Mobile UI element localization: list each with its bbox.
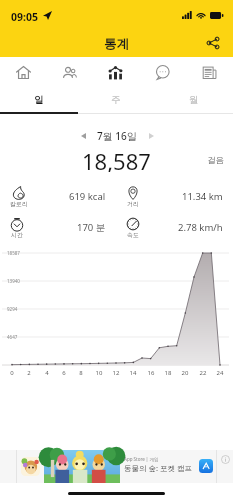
staticText: 일 [34,94,44,106]
button[interactable]: 시간 [0,212,116,243]
staticText: 걸음 [207,155,224,166]
staticText: 16 [145,369,157,377]
staticText: 거리 [127,200,139,208]
staticText: 시간 [11,231,23,239]
button[interactable]: 월 [155,88,233,114]
staticText: 월 [189,94,199,106]
staticText: 13940 [7,278,20,284]
staticText: 6 [58,369,70,377]
button[interactable]: App Store | 게임 [0,450,233,483]
staticText: 4 [41,369,53,377]
staticText: 9294 [7,306,18,312]
button[interactable]: Share [200,30,226,56]
staticText: 4647 [7,334,18,340]
button[interactable]: 칼로리 [0,181,116,212]
staticText: 0 [6,369,18,377]
staticText: 18 [162,369,174,377]
staticText: 18587 [7,250,20,256]
staticText: 12 [110,369,122,377]
staticText: 18,587 [82,146,151,172]
button[interactable]: 주 [77,88,155,114]
staticText: 09:05 [11,10,38,24]
staticText: 7월 16일 [97,129,137,143]
button[interactable]: 속도 [116,212,233,243]
staticText: 170 분 [77,221,106,234]
staticText: App Store | 게임 [124,456,159,462]
staticText: 칼로리 [10,200,28,208]
button[interactable]: Next day [142,127,160,144]
staticText: 속도 [127,231,139,239]
staticText: 2 [23,369,35,377]
staticText: 619 kcal [69,190,106,203]
button[interactable]: News [186,57,233,88]
button[interactable]: Previous day [74,127,92,144]
staticText: 2.78 km/h [178,221,223,234]
button[interactable]: 거리 [116,181,233,212]
staticText: 14 [127,369,139,377]
staticText: 10 [93,369,105,377]
button[interactable]: 일 [0,88,77,114]
staticText: 통계 [104,36,129,52]
staticText: 주 [111,94,121,106]
staticText: 동물의 숲: 포켓 캠프 [124,463,192,473]
staticText: 20 [179,369,191,377]
button[interactable]: Home [0,57,46,88]
staticText: 11.34 km [182,190,223,203]
button[interactable]: Statistics [92,57,139,88]
staticText: 22 [197,369,209,377]
button[interactable]: Friends [46,57,92,88]
button[interactable]: Chat [139,57,186,88]
staticText: 8 [75,369,87,377]
staticText: 24 [214,369,226,377]
